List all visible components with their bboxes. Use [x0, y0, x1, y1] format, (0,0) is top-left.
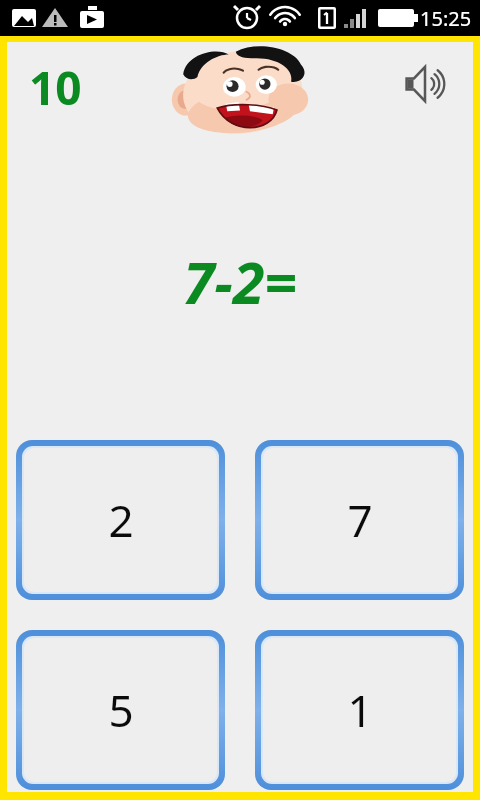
staticText: 5	[108, 680, 134, 740]
button[interactable]: 7	[255, 440, 464, 600]
button[interactable]: Speak the question	[399, 58, 451, 110]
staticText: 7	[347, 490, 373, 550]
staticText: 10	[29, 56, 82, 119]
button[interactable]: 2	[16, 440, 225, 600]
staticText: 1	[347, 680, 373, 740]
button[interactable]: 1	[255, 630, 464, 790]
button[interactable]: 5	[16, 630, 225, 790]
staticText: 2	[108, 490, 134, 550]
staticText: 7-2=	[183, 243, 297, 321]
staticText: 15:25	[420, 5, 472, 32]
